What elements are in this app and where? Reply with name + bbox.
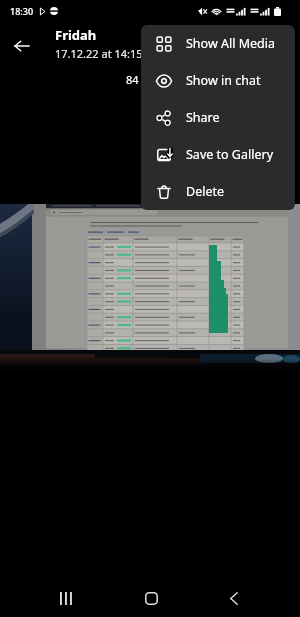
button[interactable]: Show in chat xyxy=(141,62,295,99)
staticText: 17.12.22 at 14:15 xyxy=(55,46,143,61)
button[interactable]: Home xyxy=(129,583,173,613)
button[interactable]: Save to Gallery xyxy=(141,136,295,173)
staticText: Delete xyxy=(186,183,225,200)
button[interactable]: Back xyxy=(6,30,38,62)
button[interactable]: Recent apps xyxy=(44,583,88,613)
staticText: 84 xyxy=(126,72,139,87)
staticText: Fridah xyxy=(55,26,97,44)
staticText: 18:30 xyxy=(10,5,34,17)
button[interactable]: Share xyxy=(141,99,295,136)
button[interactable]: Show All Media xyxy=(141,25,295,62)
staticText: Show in chat xyxy=(186,72,261,89)
staticText: Show All Media xyxy=(186,35,275,52)
button[interactable]: Back xyxy=(212,583,256,613)
button[interactable]: Delete xyxy=(141,173,295,210)
staticText: Share xyxy=(186,109,220,126)
staticText: Save to Gallery xyxy=(186,146,274,163)
